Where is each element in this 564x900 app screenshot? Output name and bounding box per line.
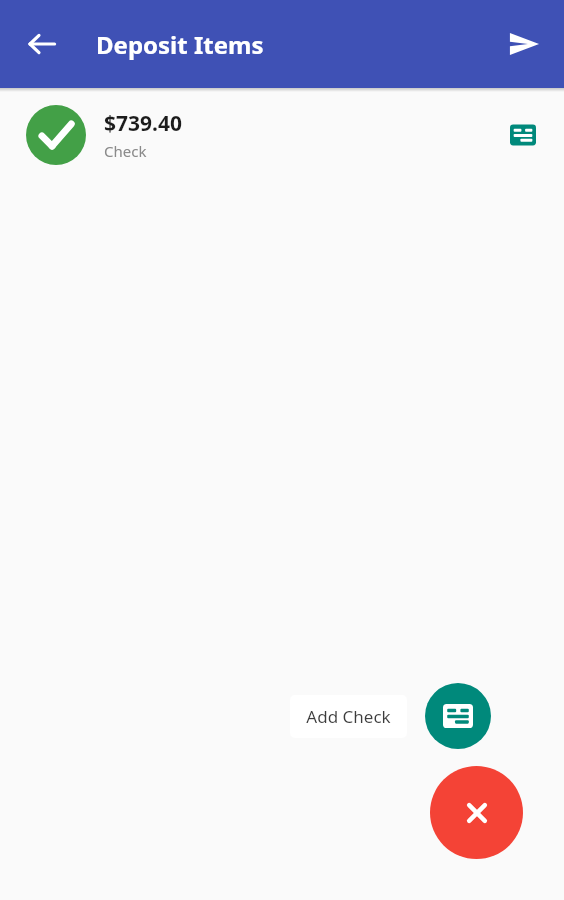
button[interactable]: $739.40 [0,92,564,178]
button[interactable]: Send deposit [496,16,552,72]
button[interactable]: Back [14,16,70,72]
staticText: Check [104,141,147,161]
staticText: Deposit Items [96,28,264,61]
staticText: $739.40 [104,109,182,138]
button[interactable]: View check image [500,112,546,158]
button[interactable]: Add Check [425,683,491,749]
button[interactable]: Add Check [290,695,407,738]
button[interactable]: Close menu [430,766,523,859]
staticText: Add Check [306,705,391,728]
